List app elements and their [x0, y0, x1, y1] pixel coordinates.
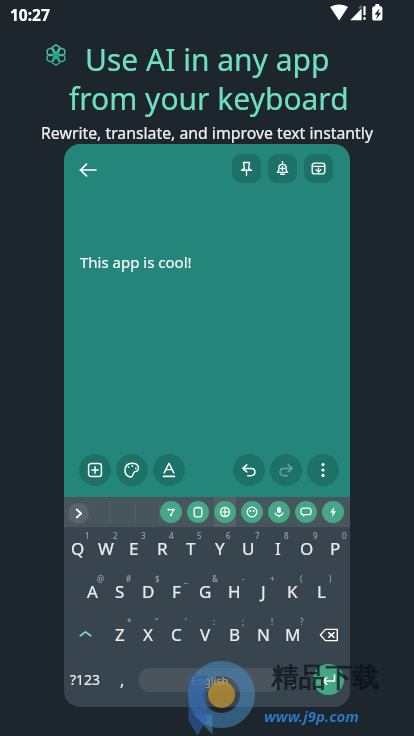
button[interactable]: J — [249, 570, 278, 613]
button[interactable]: . — [282, 656, 307, 703]
staticText: J — [261, 580, 266, 603]
button[interactable]: Redo — [270, 454, 302, 486]
button[interactable]: AI suggestions — [160, 497, 182, 527]
staticText: I — [275, 537, 281, 560]
staticText: X — [143, 623, 153, 646]
staticText: ; — [242, 616, 245, 627]
staticText: 10:27 — [10, 4, 50, 25]
button[interactable]: Shift — [64, 613, 106, 656]
button[interactable]: C — [162, 613, 191, 656]
staticText: S — [115, 580, 125, 603]
staticText: F — [172, 580, 181, 603]
staticText: W — [98, 537, 114, 560]
staticText: # — [126, 573, 132, 584]
button[interactable]: Voice input — [268, 497, 290, 527]
button[interactable]: Backspace — [307, 613, 350, 656]
staticText: C — [171, 623, 182, 646]
staticText: : — [213, 616, 216, 627]
button[interactable]: Notifications — [268, 154, 297, 183]
staticText: , — [120, 669, 125, 691]
button[interactable]: X — [134, 613, 162, 656]
staticText: N — [257, 623, 270, 646]
staticText: 2 — [113, 530, 118, 541]
button[interactable]: U — [234, 527, 263, 570]
staticText: 0 — [342, 530, 347, 541]
staticText: ( — [300, 573, 303, 584]
staticText: B — [229, 623, 241, 646]
staticText: Y — [215, 537, 225, 560]
button[interactable]: M — [278, 613, 307, 656]
staticText: @ — [97, 573, 105, 584]
button[interactable]: Add — [79, 454, 111, 486]
staticText: English — [191, 673, 229, 688]
button[interactable]: W — [92, 527, 120, 570]
button[interactable]: ?123 — [64, 656, 106, 703]
button[interactable]: R — [148, 527, 176, 570]
button[interactable]: Undo — [233, 454, 265, 486]
staticText: from your keyboard — [69, 78, 349, 119]
button[interactable]: L — [307, 570, 336, 613]
button[interactable]: F — [162, 570, 191, 613]
staticText: Q — [71, 537, 85, 560]
staticText: M — [285, 623, 301, 646]
staticText: ) — [329, 573, 332, 584]
button[interactable]: English — [138, 668, 282, 692]
button[interactable]: V — [191, 613, 220, 656]
button[interactable]: P — [321, 527, 350, 570]
button[interactable]: Clipboard — [187, 497, 209, 527]
button[interactable]: Y — [205, 527, 234, 570]
button[interactable]: K — [278, 570, 307, 613]
button[interactable]: Quick actions — [322, 497, 344, 527]
staticText: Use AI in any app — [85, 39, 330, 80]
staticText: 9 — [313, 530, 318, 541]
staticText: _ — [184, 573, 188, 584]
button[interactable]: B — [220, 613, 249, 656]
button[interactable]: T — [176, 527, 205, 570]
button[interactable]: Z — [106, 613, 134, 656]
staticText: E — [129, 537, 139, 560]
staticText: 4 — [169, 530, 174, 541]
staticText: . — [292, 669, 297, 691]
staticText: 7 — [255, 530, 260, 541]
staticText: ' — [185, 616, 187, 627]
button[interactable]: , — [106, 656, 138, 703]
button[interactable]: Chat — [295, 497, 317, 527]
button[interactable]: E — [120, 527, 148, 570]
button[interactable]: Stickers — [241, 497, 263, 527]
staticText: H — [228, 580, 241, 603]
staticText: G — [199, 580, 212, 603]
staticText: 1 — [85, 530, 90, 541]
staticText: $ — [155, 573, 160, 584]
button[interactable]: I — [263, 527, 292, 570]
button[interactable]: Q — [64, 527, 92, 570]
staticText: Z — [115, 623, 125, 646]
button[interactable]: A — [78, 570, 106, 613]
staticText: V — [200, 623, 211, 646]
button[interactable]: Theme — [116, 454, 148, 486]
button[interactable]: S — [106, 570, 134, 613]
staticText: Rewrite, translate, and improve text ins… — [0, 122, 414, 144]
staticText: 8 — [284, 530, 289, 541]
staticText: This app is cool! — [80, 252, 192, 272]
staticText: K — [287, 580, 298, 603]
button[interactable]: Enter — [307, 656, 350, 703]
button[interactable]: Expand toolbar — [68, 503, 89, 524]
staticText: ? — [300, 616, 304, 627]
staticText: U — [242, 537, 255, 560]
button[interactable]: H — [220, 570, 249, 613]
button[interactable]: Pin — [232, 154, 261, 183]
button[interactable]: Back — [72, 154, 104, 186]
staticText: T — [186, 537, 196, 560]
staticText: R — [157, 537, 168, 560]
button[interactable]: N — [249, 613, 278, 656]
button[interactable]: More options — [307, 454, 339, 486]
button[interactable]: Format text — [153, 454, 185, 486]
button[interactable]: O — [292, 527, 321, 570]
staticText: P — [330, 537, 341, 560]
staticText: O — [300, 537, 314, 560]
button[interactable]: G — [191, 570, 220, 613]
button[interactable]: Themes — [214, 497, 236, 527]
button[interactable]: D — [134, 570, 162, 613]
staticText: " — [155, 616, 159, 627]
button[interactable]: Archive — [304, 154, 333, 183]
